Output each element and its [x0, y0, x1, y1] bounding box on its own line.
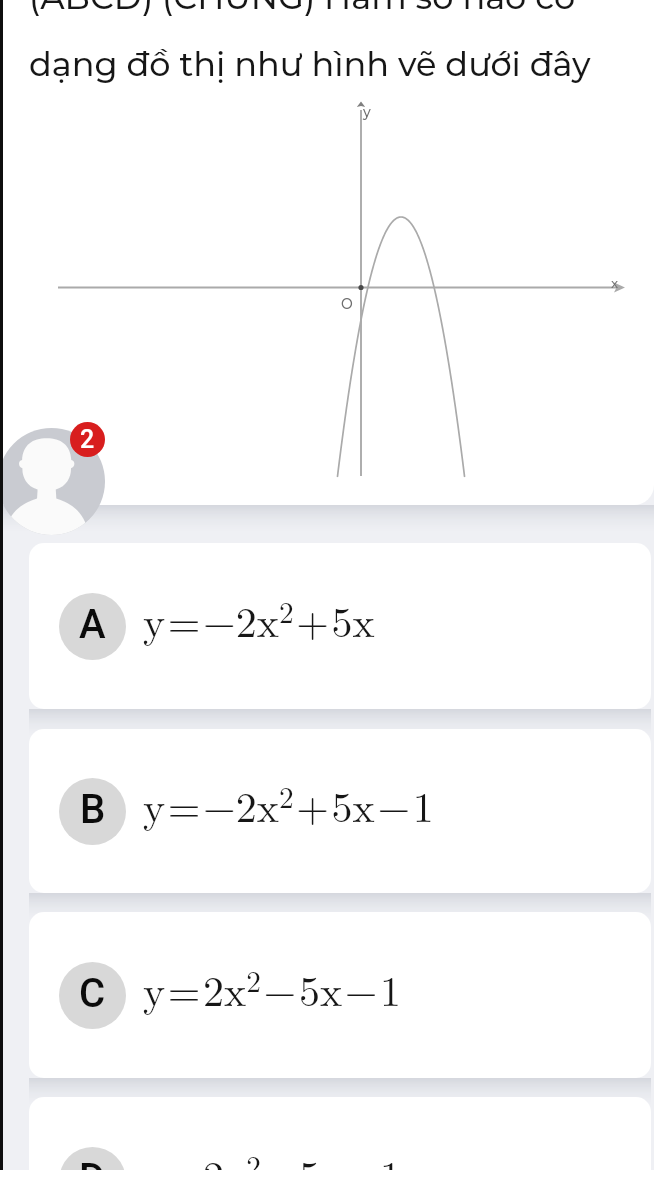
staticText: (ABCD) (CHUNG) Hàm số nào có: [29, 0, 576, 18]
staticText: y = 2x2 − 5x − 1: [143, 1144, 402, 1183]
staticText: y = 2x2 − 5x − 1: [143, 959, 402, 1019]
button[interactable]: A: [29, 543, 651, 709]
staticText: O: [341, 295, 353, 312]
button[interactable]: C: [29, 912, 651, 1078]
staticText: y = −2x2 + 5x − 1: [143, 775, 434, 835]
staticText: D: [79, 1155, 106, 1183]
button[interactable]: Profile: [0, 428, 105, 535]
button[interactable]: 2 notifications: [70, 422, 105, 457]
staticText: A: [79, 601, 106, 648]
staticText: 2: [80, 425, 95, 454]
button[interactable]: D: [29, 1097, 651, 1183]
staticText: y: [363, 103, 371, 120]
staticText: C: [79, 970, 106, 1017]
staticText: x: [611, 275, 619, 291]
button[interactable]: B: [29, 729, 651, 893]
staticText: y = −2x2 + 5x: [143, 590, 375, 650]
staticText: dạng đồ thị như hình vẽ dưới đây: [29, 44, 591, 85]
staticText: B: [80, 786, 106, 833]
